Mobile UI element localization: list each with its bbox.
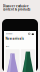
button[interactable]: Bag	[32, 32, 34, 35]
staticText: Discover exclusive	[3, 4, 29, 8]
staticText: All items	[6, 46, 10, 47]
button[interactable]: Search	[28, 32, 30, 35]
button[interactable]	[5, 49, 20, 72]
staticText: content & products	[3, 8, 30, 11]
button[interactable]: boutique	[6, 33, 16, 35]
button[interactable]	[21, 49, 35, 72]
button[interactable]: All items	[6, 45, 14, 48]
staticText: boutique	[6, 33, 13, 35]
staticText: New arrivals	[6, 37, 24, 40]
